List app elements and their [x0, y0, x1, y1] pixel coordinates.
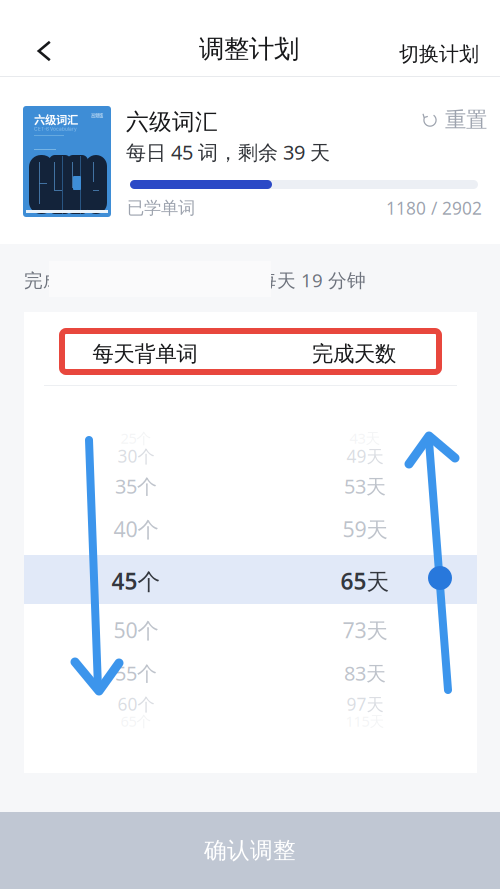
staticText: 45个: [111, 566, 160, 596]
staticText: 35个: [115, 473, 157, 499]
staticText: 83天: [344, 660, 386, 686]
staticText: 完成天数: [312, 341, 396, 367]
staticText: 59天: [342, 515, 387, 543]
staticText: 25个: [120, 428, 151, 448]
staticText: 重置: [445, 107, 487, 133]
staticText: 每日 45 词，剩余 39 天: [126, 139, 330, 165]
button[interactable]: 重置: [422, 106, 500, 134]
staticText: CET-6 Vocabulary: [34, 126, 77, 132]
staticText: 40个: [113, 515, 158, 543]
staticText: 确认调整: [204, 837, 296, 864]
button[interactable]: 切换计划: [387, 33, 491, 75]
staticText: 73天: [342, 616, 387, 644]
staticText: 1180 / 2902: [386, 196, 482, 219]
staticText: 六级词汇: [126, 108, 218, 136]
staticText: 六级词汇: [34, 111, 78, 127]
staticText: 60个: [117, 692, 154, 715]
staticText: 50个: [113, 616, 158, 644]
staticText: 55个: [115, 660, 157, 686]
staticText: 65个: [120, 711, 151, 731]
staticText: 97天: [346, 692, 383, 715]
button[interactable]: Back: [8, 27, 80, 75]
staticText: 调整计划: [199, 33, 299, 64]
staticText: 切换计划: [399, 42, 479, 66]
staticText: 49天: [346, 444, 383, 467]
staticText: 115天: [345, 711, 384, 731]
staticText: 65天: [340, 566, 389, 596]
staticText: 30个: [117, 444, 154, 467]
staticText: 每天背单词: [92, 341, 197, 367]
staticText: 已学单词: [127, 197, 195, 219]
button[interactable]: 确认调整: [0, 812, 500, 889]
staticText: 完成全部需要 39 天 ， 预计每天 19 分钟: [24, 268, 366, 292]
staticText: 53天: [344, 473, 386, 499]
staticText: 高频版: [91, 112, 103, 118]
staticText: 43天: [349, 428, 380, 448]
